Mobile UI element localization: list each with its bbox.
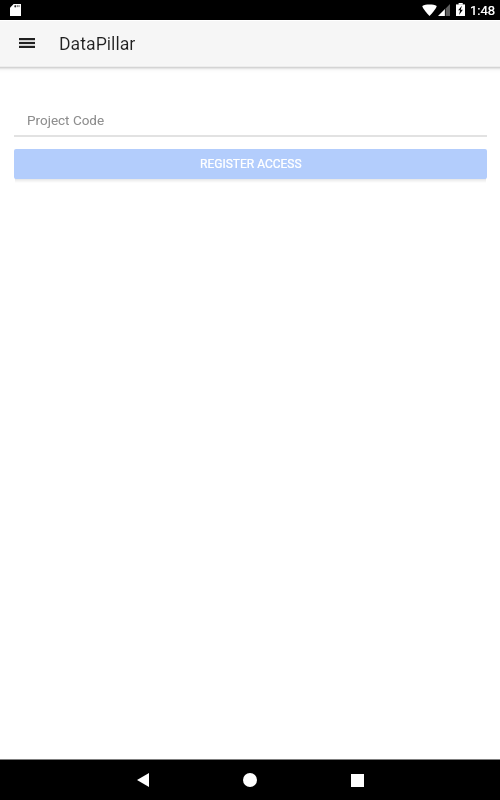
staticText: Project Code: [27, 112, 105, 128]
button[interactable]: Back: [123, 760, 163, 800]
button[interactable]: Project Code: [14, 100, 487, 136]
button[interactable]: Open navigation menu: [5, 21, 49, 65]
button[interactable]: Recent apps: [337, 760, 377, 800]
button[interactable]: Home: [230, 760, 270, 800]
staticText: 1:48: [470, 3, 496, 18]
staticText: REGISTER ACCESS: [200, 157, 302, 171]
button[interactable]: REGISTER ACCESS: [14, 149, 487, 179]
staticText: DataPillar: [59, 34, 136, 55]
